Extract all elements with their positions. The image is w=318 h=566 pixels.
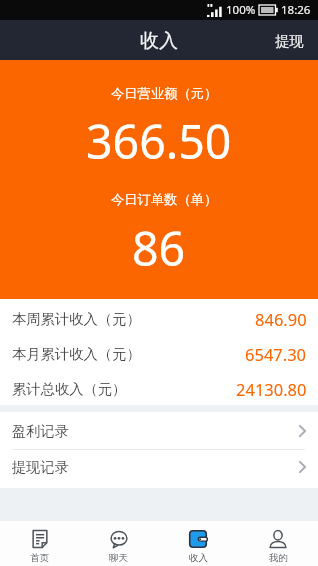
- staticText: 收入: [189, 552, 208, 564]
- staticText: 366.50: [86, 109, 232, 172]
- button[interactable]: 累计总收入（元）: [0, 369, 318, 405]
- staticText: 86: [132, 216, 186, 279]
- staticText: 100%: [226, 2, 256, 18]
- staticText: 聊天: [109, 552, 128, 564]
- button[interactable]: 提现: [262, 22, 318, 58]
- staticText: 首页: [30, 552, 49, 564]
- staticText: 今日营业额（元）: [111, 85, 218, 102]
- other: Income: [189, 530, 207, 548]
- button[interactable]: 本周累计收入（元）: [0, 299, 318, 334]
- staticText: 提现: [275, 32, 304, 50]
- staticText: 本月累计收入（元）: [12, 345, 141, 363]
- other: Home: [31, 530, 49, 548]
- staticText: 收入: [140, 29, 178, 53]
- button[interactable]: Home: [0, 521, 79, 566]
- other: Chat: [110, 530, 128, 548]
- other: Profile: [269, 530, 287, 548]
- button[interactable]: 本月累计收入（元）: [0, 334, 318, 369]
- staticText: 我的: [269, 552, 288, 564]
- staticText: 24130.80: [236, 378, 307, 400]
- staticText: 846.90: [255, 308, 307, 330]
- staticText: 6547.30: [245, 343, 307, 365]
- staticText: 今日订单数（单）: [111, 191, 218, 208]
- staticText: 累计总收入（元）: [12, 380, 127, 398]
- button[interactable]: 提现记录: [0, 450, 318, 488]
- button[interactable]: Income: [158, 521, 238, 566]
- staticText: 本周累计收入（元）: [12, 310, 141, 328]
- button[interactable]: Profile: [238, 521, 318, 566]
- staticText: 提现记录: [12, 458, 70, 476]
- staticText: 盈利记录: [12, 422, 70, 440]
- button[interactable]: Chat: [79, 521, 158, 566]
- button[interactable]: 盈利记录: [0, 412, 318, 449]
- staticText: 18:26: [281, 2, 311, 18]
